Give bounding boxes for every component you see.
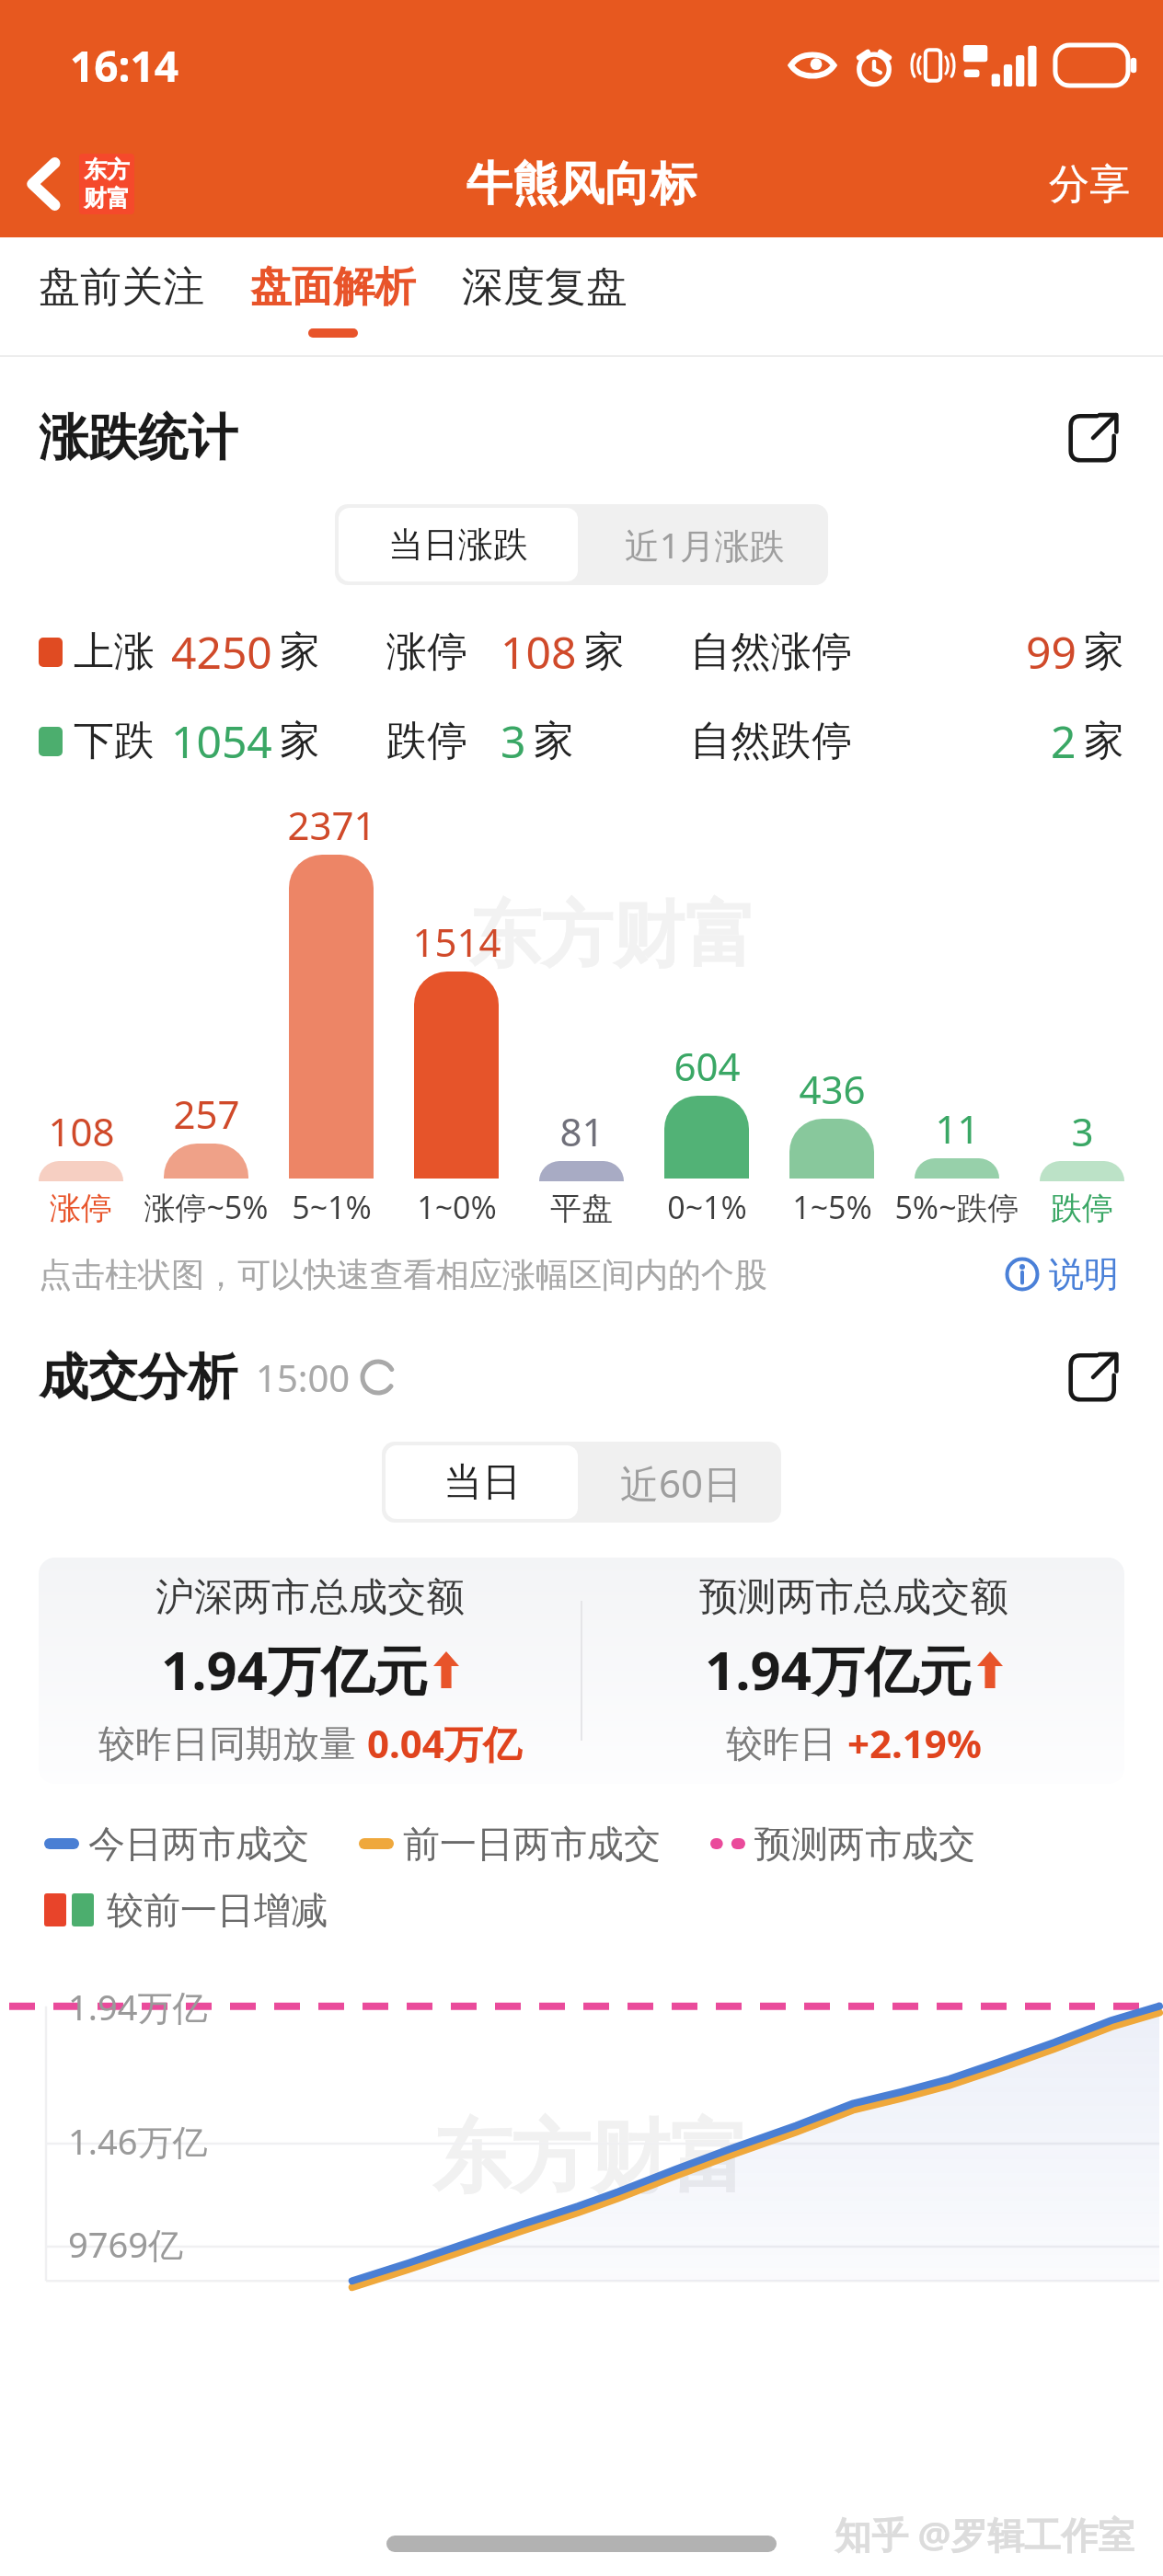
button[interactable]: 3 — [1019, 1105, 1145, 1228]
staticText: 财富 — [84, 184, 130, 213]
staticText: 2371 — [287, 799, 376, 851]
staticText: 预测两市总成交额 — [699, 1573, 1008, 1622]
staticText: 知乎 @罗辑工作室 — [835, 2509, 1135, 2559]
staticText: 1.94万亿元 — [705, 1633, 972, 1706]
staticText: 盘前关注 — [39, 261, 204, 314]
button[interactable]: 当日涨跌 — [339, 508, 578, 581]
staticText: 下跌 — [74, 716, 155, 766]
staticText: 108 — [48, 1105, 115, 1157]
staticText: 前一日两市成交 — [403, 1821, 661, 1867]
button[interactable]: 返回 东方财富 — [22, 146, 142, 222]
button[interactable]: 当日 — [386, 1445, 578, 1519]
button[interactable]: 81 — [519, 1105, 644, 1228]
button[interactable]: 盘面解析 — [245, 237, 421, 338]
staticText: 15:00 — [256, 1352, 351, 1402]
staticText: 1.46万亿 — [68, 2117, 208, 2165]
button[interactable]: 近1月涨跌 — [585, 508, 824, 581]
button[interactable]: 257 — [144, 1087, 269, 1228]
button[interactable]: 展开成交分析 — [1062, 1346, 1124, 1409]
staticText: 436 — [799, 1063, 866, 1115]
staticText: 0.04万亿 — [367, 1717, 522, 1769]
staticText: 涨停 — [386, 627, 467, 677]
staticText: 4250 — [171, 622, 272, 682]
staticText: 跌停 — [1051, 1189, 1113, 1228]
staticText: 257 — [173, 1087, 240, 1140]
button[interactable]: 108 — [18, 1105, 144, 1228]
staticText: 16:14 — [70, 37, 179, 95]
staticText: 较昨日 — [726, 1720, 836, 1766]
staticText: 近60日 — [620, 1456, 743, 1509]
staticText: 跌停 — [386, 716, 467, 766]
staticText: 5%~跌停 — [894, 1186, 1019, 1228]
staticText: 3 — [501, 711, 526, 771]
button[interactable]: 说明 — [999, 1247, 1124, 1302]
button[interactable]: 展开涨跌统计 — [1062, 407, 1124, 469]
button[interactable]: 刷新 — [360, 1359, 397, 1396]
staticText: 自然跌停 — [690, 716, 852, 766]
staticText: 0~1% — [667, 1186, 747, 1228]
staticText: 涨跌统计 — [39, 407, 237, 469]
staticText: 当日 — [443, 1458, 521, 1507]
staticText: 家 — [1084, 716, 1124, 766]
staticText: 较前一日增减 — [107, 1887, 328, 1933]
staticText: 3 — [1071, 1105, 1094, 1157]
staticText: 家 — [1084, 627, 1124, 677]
button[interactable]: 1514 — [394, 915, 519, 1228]
button[interactable]: 分享 — [1016, 143, 1163, 226]
staticText: 说明 — [1049, 1252, 1119, 1296]
button[interactable]: 604 — [644, 1040, 769, 1228]
staticText: 当日涨跌 — [388, 523, 528, 567]
staticText: 1054 — [171, 711, 272, 771]
staticText: 东方 — [84, 155, 130, 184]
staticText: 家 — [584, 627, 625, 677]
staticText: 平盘 — [550, 1189, 613, 1228]
staticText: 牛熊风向标 — [466, 155, 697, 213]
staticText: 深度复盘 — [462, 261, 628, 314]
staticText: 东方财富 — [469, 891, 756, 981]
staticText: 成交分析 — [39, 1346, 237, 1409]
staticText: 108 — [501, 622, 577, 682]
staticText: 11 — [935, 1102, 980, 1155]
staticText: 今日两市成交 — [88, 1821, 309, 1867]
button[interactable]: 11 — [894, 1102, 1019, 1228]
staticText: 1~0% — [417, 1186, 497, 1228]
staticText: 81 — [559, 1105, 605, 1157]
staticText: 1514 — [412, 915, 501, 968]
staticText: +2.19% — [847, 1717, 982, 1769]
staticText: 1.94万亿 — [68, 1983, 208, 2030]
staticText: 近1月涨跌 — [625, 521, 785, 569]
button[interactable]: 2371 — [269, 799, 394, 1228]
button[interactable]: 近60日 — [585, 1445, 777, 1519]
staticText: 东方财富 — [432, 2108, 749, 2207]
button[interactable]: 盘前关注 — [33, 237, 210, 328]
staticText: 1.94万亿元 — [161, 1633, 428, 1706]
staticText: 上涨 — [74, 627, 155, 677]
staticText: 较昨日同期放量 — [98, 1720, 356, 1766]
staticText: 自然涨停 — [690, 627, 852, 677]
staticText: 沪深两市总成交额 — [155, 1573, 465, 1622]
staticText: 604 — [674, 1040, 741, 1092]
button[interactable]: 436 — [769, 1063, 894, 1228]
staticText: 家 — [534, 716, 574, 766]
button[interactable]: 深度复盘 — [456, 237, 633, 328]
staticText: 家 — [280, 716, 320, 766]
staticText: 家 — [280, 627, 320, 677]
staticText: 涨停 — [50, 1189, 112, 1228]
staticText: 预测两市成交 — [754, 1821, 975, 1867]
staticText: 1~5% — [792, 1186, 872, 1228]
staticText: 涨停~5% — [144, 1186, 269, 1228]
staticText: 2 — [1051, 711, 1077, 771]
staticText: 99 — [1026, 622, 1077, 682]
staticText: 5~1% — [292, 1186, 372, 1228]
staticText: 盘面解析 — [250, 261, 416, 314]
staticText: 点击柱状图，可以快速查看相应涨幅区间内的个股 — [39, 1254, 767, 1295]
staticText: 9769亿 — [68, 2220, 183, 2268]
